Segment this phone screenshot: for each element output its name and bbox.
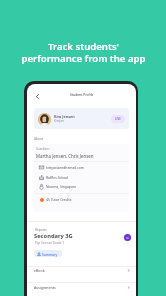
button[interactable]: Raffles School	[34, 173, 129, 182]
button[interactable]: Kira Jensen	[34, 108, 129, 129]
staticText: Summary	[42, 252, 58, 256]
button[interactable]: Open report	[124, 234, 131, 241]
staticText: Raffles School	[46, 175, 69, 180]
staticText: Assignments	[34, 285, 127, 290]
button[interactable]: Assignments	[27, 280, 136, 295]
staticText: Kira Jensen	[54, 114, 75, 119]
staticText: Reports	[35, 228, 47, 232]
staticText: Secondary 3G	[34, 232, 73, 240]
staticText: Student Profile	[70, 92, 94, 96]
button[interactable]: Novena, Singapore	[34, 182, 129, 191]
staticText: Martha Jensen, Chris Jensen	[36, 153, 94, 159]
staticText: Guardians	[36, 147, 50, 151]
button[interactable]: 45 Tutor Credits	[34, 195, 129, 204]
staticText: LIVE	[115, 117, 121, 121]
staticText: kirtyoriaendhemail.com	[46, 165, 84, 170]
staticText: About	[34, 137, 44, 141]
button[interactable]: Back	[32, 91, 43, 102]
button[interactable]: kirtyoriaendhemail.com	[34, 163, 129, 172]
staticText: KimJen	[54, 119, 65, 123]
staticText: 45 Tutor Credits	[46, 197, 72, 202]
staticText: Top Science Grade 1	[35, 241, 65, 245]
staticText: eBook	[34, 268, 127, 273]
staticText: Track students' performance from the app	[21, 40, 146, 65]
button[interactable]: Summary	[34, 250, 62, 257]
button[interactable]: eBook	[27, 263, 136, 278]
staticText: Novena, Singapore	[46, 184, 77, 189]
button[interactable]: LIVE	[111, 115, 125, 123]
